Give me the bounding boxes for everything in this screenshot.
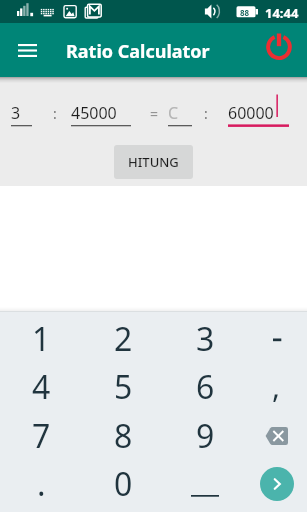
button[interactable]: 4 — [0, 362, 82, 411]
button[interactable]: , — [246, 362, 307, 411]
staticText: 2 — [114, 317, 133, 361]
staticText: 0 — [114, 462, 133, 506]
staticText: 4 — [32, 365, 51, 409]
button[interactable]: 0 — [82, 459, 164, 508]
button[interactable]: Open navigation drawer — [13, 36, 41, 64]
button[interactable]: 6 — [164, 362, 246, 411]
button[interactable]: 60000 — [228, 97, 289, 129]
button[interactable]: 5 — [82, 362, 164, 411]
staticText: 45000 — [71, 102, 117, 124]
button[interactable]: 1 — [0, 314, 82, 363]
staticText: Ratio Calculator — [66, 39, 210, 64]
staticText: 3 — [11, 102, 21, 124]
button[interactable]: 3 — [11, 97, 32, 129]
staticText: : — [204, 104, 208, 123]
staticText: 9 — [196, 414, 215, 458]
staticText: . — [37, 462, 46, 506]
button[interactable]: 2 — [82, 314, 164, 363]
staticText: 1 — [32, 317, 51, 361]
button[interactable]: 8 — [82, 411, 164, 460]
button[interactable]: C — [168, 97, 192, 129]
staticText: 6 — [196, 365, 215, 409]
button[interactable]: 9 — [164, 411, 246, 460]
button[interactable]: Underscore — [164, 459, 246, 508]
staticText: : — [53, 104, 57, 123]
button[interactable]: Backspace — [246, 411, 307, 460]
staticText: 3 — [196, 317, 215, 361]
staticText: 14:44 — [265, 4, 299, 22]
button[interactable]: Power — [264, 32, 294, 62]
button[interactable]: HITUNG — [114, 145, 193, 179]
button[interactable] — [246, 314, 307, 363]
button[interactable]: . — [0, 459, 82, 508]
staticText: 7 — [32, 414, 51, 458]
button[interactable]: 7 — [0, 411, 82, 460]
staticText: , — [272, 366, 281, 407]
staticText: = — [150, 104, 159, 123]
staticText: HITUNG — [128, 153, 179, 171]
button[interactable]: 45000 — [71, 97, 131, 129]
staticText: C — [168, 102, 179, 124]
staticText: 5 — [114, 365, 133, 409]
staticText: 88 — [240, 7, 250, 18]
staticText: 8 — [114, 414, 133, 458]
button[interactable]: 3 — [164, 314, 246, 363]
staticText: 60000 — [228, 102, 274, 124]
button[interactable]: Enter — [246, 459, 307, 508]
